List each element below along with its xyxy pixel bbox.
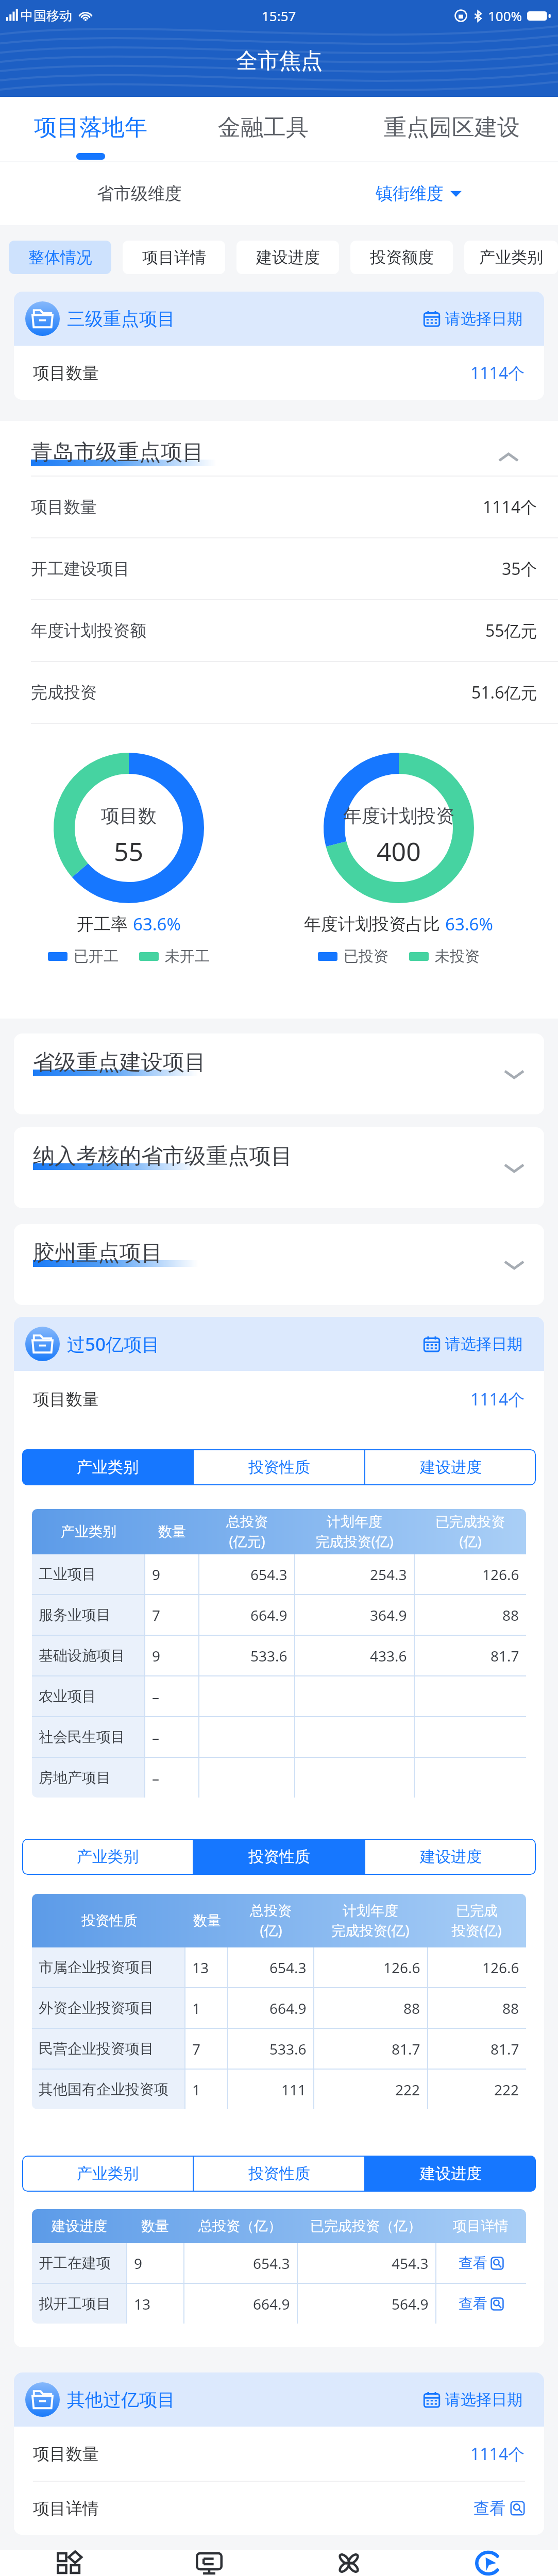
staticText: 投资性质	[248, 2164, 310, 2183]
staticText: 开工率	[77, 913, 128, 935]
staticText: 整体情况	[28, 247, 92, 267]
staticText: 完成投资(亿)	[331, 1921, 410, 1940]
button[interactable]: 查看	[436, 2284, 526, 2324]
button[interactable]: 投资性质	[194, 1839, 364, 1875]
button[interactable]: 产业类别	[464, 241, 558, 274]
staticText: 投资额度	[370, 247, 434, 267]
staticText: 开工建设项目	[31, 558, 130, 579]
staticText: 过50亿项目	[67, 1332, 160, 1357]
button[interactable]: 建设进度	[365, 1839, 536, 1875]
staticText: 数量	[141, 2217, 169, 2235]
staticText: 1114个	[470, 362, 525, 384]
staticText: 35个	[502, 557, 537, 580]
button[interactable]: 项目一览	[139, 2550, 279, 2576]
staticText: 7	[152, 1605, 161, 1625]
staticText: 已完成投资	[435, 1513, 505, 1531]
staticText: 1114个	[483, 496, 537, 518]
staticText: 126.6	[383, 1958, 420, 1977]
staticText: 镇街维度	[376, 183, 444, 205]
button[interactable]: 全市焦点	[418, 2550, 558, 2576]
staticText: 产业类别	[77, 2164, 139, 2183]
staticText: 400	[377, 834, 421, 869]
staticText: 126.6	[482, 1958, 519, 1977]
staticText: 拟开工项目	[39, 2295, 111, 2313]
button[interactable]: 查看	[436, 2243, 526, 2283]
button[interactable]: 省市级维度	[0, 162, 279, 225]
button[interactable]: 纳入考核的省市级重点项目	[14, 1127, 544, 1208]
staticText: 222	[494, 2080, 519, 2099]
staticText: 查看	[474, 2498, 505, 2518]
button[interactable]: 投资额度	[350, 241, 453, 274]
staticText: 建设进度	[256, 247, 320, 267]
staticText: 654.3	[250, 1565, 288, 1584]
staticText: 请选择日期	[445, 2390, 522, 2410]
staticText: 投资(亿)	[451, 1921, 502, 1940]
button[interactable]: 请选择日期	[424, 1334, 522, 1354]
button[interactable]: 产业类别	[22, 2156, 193, 2192]
button[interactable]: 建设进度	[365, 2156, 536, 2192]
staticText: 533.6	[269, 2039, 307, 2059]
staticText: 产业类别	[77, 1847, 139, 1867]
staticText: 项目数	[101, 804, 157, 827]
staticText: 433.6	[370, 1646, 407, 1666]
button[interactable]: 产业类别	[22, 1449, 193, 1485]
staticText: 1114个	[470, 1388, 525, 1411]
button[interactable]: 投资性质	[194, 1449, 364, 1485]
button[interactable]: 投资性质	[194, 2156, 364, 2192]
button[interactable]: 请选择日期	[424, 309, 522, 329]
staticText: –	[152, 1687, 160, 1706]
button[interactable]: 查看	[474, 2498, 525, 2518]
staticText: 13	[134, 2294, 151, 2314]
button[interactable]: 项目详情	[123, 241, 225, 274]
staticText: 88	[502, 1605, 519, 1625]
button[interactable]: 青岛市级重点项目	[31, 439, 518, 466]
staticText: 未开工	[165, 947, 210, 966]
button[interactable]: 胶州重点项目	[14, 1224, 544, 1305]
staticText: 已完成投资（亿）	[310, 2217, 421, 2235]
staticText: 55亿元	[485, 619, 537, 642]
button[interactable]: 重点园区建设	[345, 97, 558, 161]
staticText: (亿)	[260, 1921, 282, 1940]
staticText: 纳入考核的省市级重点项目	[33, 1143, 293, 1170]
staticText: 63.6%	[445, 912, 493, 936]
button[interactable]: 工作中心	[0, 2550, 139, 2576]
button[interactable]: 省级重点建设项目	[14, 1033, 544, 1114]
staticText: 1114个	[470, 2443, 525, 2465]
staticText: 654.3	[253, 2253, 290, 2273]
button[interactable]: 镇街维度	[279, 162, 558, 225]
staticText: 其他过亿项目	[67, 2388, 175, 2411]
staticText: 已完成	[456, 1902, 498, 1920]
staticText: 建设进度	[420, 2164, 482, 2183]
staticText: 省级重点建设项目	[33, 1049, 206, 1076]
staticText: 已开工	[74, 947, 119, 966]
button[interactable]: 项目落地年	[0, 97, 181, 161]
staticText: 项目详情	[142, 247, 206, 267]
staticText: 81.7	[392, 2039, 420, 2059]
staticText: 1	[192, 1998, 201, 2018]
staticText: 年度计划投资额	[31, 620, 146, 641]
staticText: 查看	[459, 2254, 487, 2272]
button[interactable]: 金融工具	[181, 97, 345, 161]
staticText: 664.9	[250, 1605, 288, 1625]
button[interactable]: 产业类别	[22, 1839, 193, 1875]
button[interactable]: 建设进度	[365, 1449, 536, 1485]
staticText: 基础设施项目	[39, 1647, 125, 1665]
staticText: 项目数量	[31, 497, 97, 517]
staticText: (亿)	[459, 1532, 482, 1551]
button[interactable]: 请选择日期	[424, 2390, 522, 2410]
staticText: 88	[403, 1998, 420, 2018]
staticText: 已投资	[344, 947, 388, 966]
staticText: 项目详情	[453, 2217, 509, 2235]
button[interactable]: 发改动态	[279, 2550, 418, 2576]
staticText: 服务业项目	[39, 1606, 111, 1624]
staticText: 产业类别	[61, 1523, 116, 1540]
staticText: 完成投资	[31, 682, 97, 703]
staticText: 111	[281, 2080, 307, 2099]
staticText: 364.9	[370, 1605, 407, 1625]
staticText: 民营企业投资项目	[39, 2040, 154, 2058]
staticText: 农业项目	[39, 1687, 96, 1705]
staticText: 项目数量	[33, 363, 99, 383]
button[interactable]: 整体情况	[9, 241, 111, 274]
button[interactable]: 建设进度	[236, 241, 339, 274]
staticText: 126.6	[482, 1565, 519, 1584]
